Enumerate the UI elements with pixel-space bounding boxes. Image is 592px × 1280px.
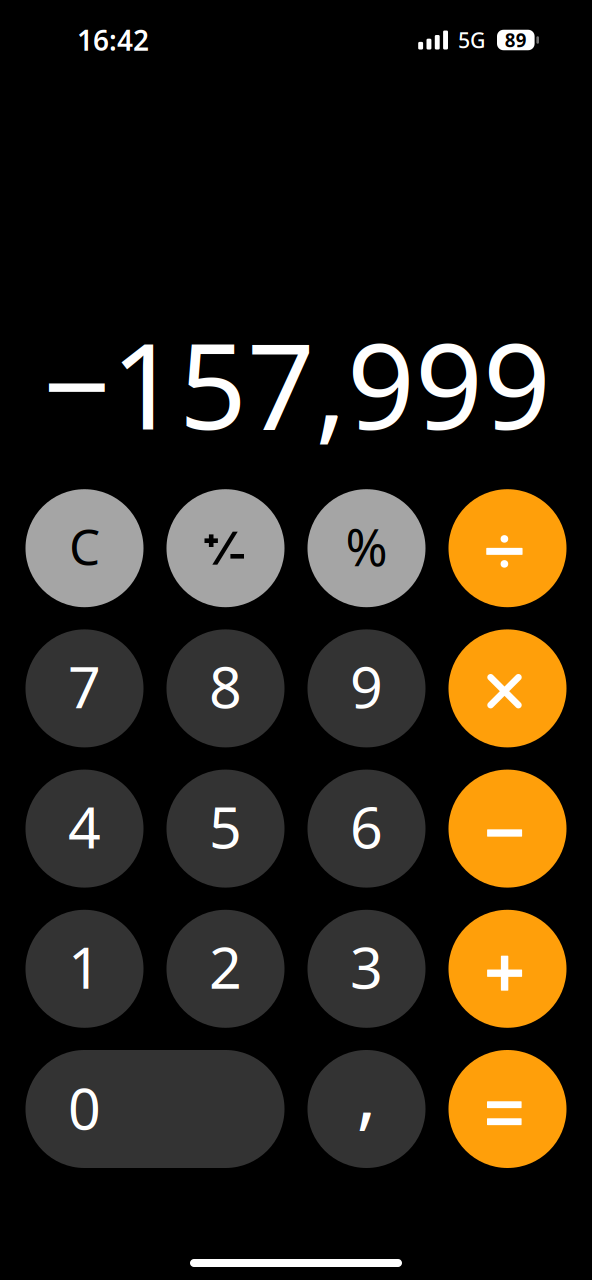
- staticText: 5: [209, 788, 242, 864]
- staticText: 9: [350, 648, 383, 724]
- button[interactable]: 2: [166, 910, 284, 1028]
- staticText: 6: [350, 788, 383, 864]
- staticText: 7: [68, 648, 101, 724]
- button[interactable]: 6: [307, 770, 425, 888]
- button[interactable]: Plus: [448, 910, 566, 1028]
- button[interactable]: 8: [166, 629, 284, 747]
- staticText: 3: [350, 928, 383, 1004]
- button[interactable]: 0: [25, 1050, 284, 1168]
- staticText: %: [345, 513, 387, 580]
- staticText: 2: [209, 928, 242, 1004]
- staticText: C: [69, 513, 100, 578]
- staticText: 89: [505, 28, 527, 52]
- button[interactable]: ,: [307, 1050, 425, 1168]
- button[interactable]: 4: [25, 770, 143, 888]
- button[interactable]: Minus: [448, 770, 566, 888]
- button[interactable]: Plus minus: [166, 489, 284, 607]
- button[interactable]: C: [25, 489, 143, 607]
- staticText: 0: [68, 1069, 101, 1145]
- button[interactable]: %: [307, 489, 425, 607]
- button[interactable]: 7: [25, 629, 143, 747]
- button[interactable]: 5: [166, 770, 284, 888]
- button[interactable]: Divide: [448, 489, 566, 607]
- staticText: −157,999: [43, 305, 551, 462]
- staticText: ,: [356, 1042, 376, 1142]
- staticText: 5G: [458, 26, 486, 54]
- staticText: 16:42: [77, 21, 149, 59]
- staticText: 4: [68, 788, 101, 864]
- staticText: 8: [209, 648, 242, 724]
- staticText: 1: [68, 928, 101, 1004]
- button[interactable]: 9: [307, 629, 425, 747]
- button[interactable]: Equals: [448, 1050, 566, 1168]
- button[interactable]: Multiply: [448, 629, 566, 747]
- button[interactable]: 1: [25, 910, 143, 1028]
- button[interactable]: 3: [307, 910, 425, 1028]
